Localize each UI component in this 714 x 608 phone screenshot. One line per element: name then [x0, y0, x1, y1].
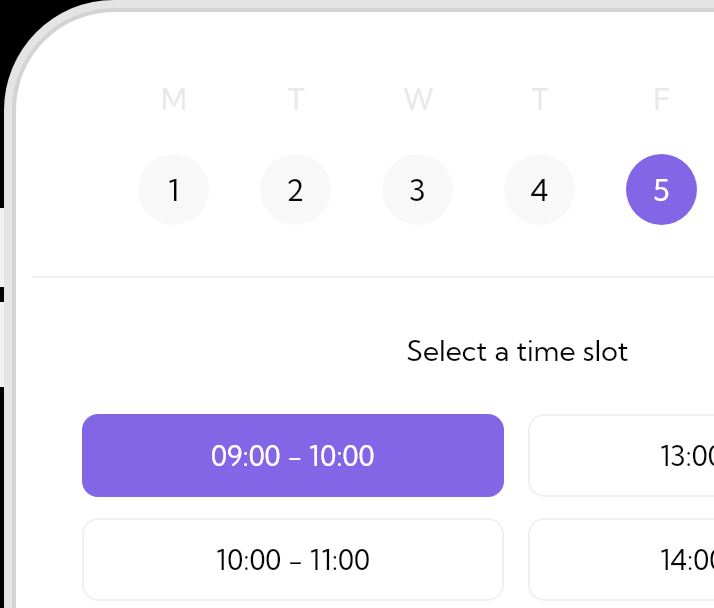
button[interactable]: 10:00 - 11:00 [82, 518, 504, 601]
staticText: 13:00 - 14:00 [660, 439, 714, 473]
button[interactable]: 14:00 - 15:00 [528, 518, 714, 601]
button[interactable]: 3 [382, 154, 453, 225]
staticText: T [531, 81, 549, 117]
staticText: M [161, 81, 187, 117]
staticText: 5 [653, 171, 670, 208]
staticText: 09:00 - 10:00 [211, 439, 375, 473]
staticText: W [403, 81, 434, 117]
staticText: 3 [409, 171, 426, 208]
staticText: T [287, 81, 305, 117]
staticText: 2 [286, 171, 305, 208]
button[interactable]: 09:00 - 10:00 [82, 414, 504, 497]
button[interactable]: 4 [504, 154, 575, 225]
staticText: 1 [168, 171, 180, 208]
staticText: 10:00 - 11:00 [216, 543, 370, 577]
staticText: F [653, 81, 671, 117]
button[interactable]: 5 [626, 154, 697, 225]
staticText: 4 [530, 171, 549, 208]
staticText: 14:00 - 15:00 [660, 543, 714, 577]
staticText: Select a time slot [406, 333, 629, 368]
button[interactable]: 1 [138, 154, 209, 225]
button[interactable]: 13:00 - 14:00 [528, 414, 714, 497]
button[interactable]: 2 [260, 154, 331, 225]
